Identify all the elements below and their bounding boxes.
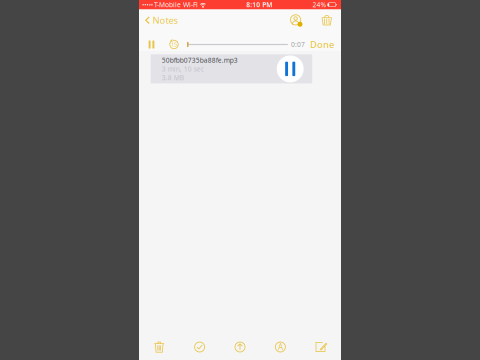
button[interactable]: Share note	[278, 9, 314, 31]
staticText: 8:10 PM	[246, 0, 272, 9]
button[interactable]: Skip back 15 seconds	[164, 34, 184, 54]
button[interactable]: 50bfbb0735ba88fe.mp3	[151, 54, 312, 83]
button[interactable]: Notes	[139, 9, 183, 31]
staticText: T-Mobile Wi-Fi	[154, 0, 198, 9]
button[interactable]: Pause	[139, 34, 164, 54]
button[interactable]: Attachments	[314, 9, 340, 31]
staticText: 3 min, 10 sec	[162, 64, 204, 73]
button[interactable]: Done	[179, 334, 220, 360]
button[interactable]: Done	[305, 34, 339, 54]
button[interactable]: Delete	[139, 334, 179, 360]
staticText: 50bfbb0735ba88fe.mp3	[162, 56, 238, 64]
staticText: 24%	[312, 0, 326, 9]
staticText: 15	[171, 41, 177, 48]
button[interactable]: Compose	[301, 334, 341, 360]
staticText: 0:07	[291, 40, 305, 49]
button[interactable]: Markup	[260, 334, 301, 360]
staticText: Notes	[152, 14, 177, 26]
staticText: Done	[310, 38, 334, 51]
staticText: 3.8 MB	[162, 73, 184, 82]
button[interactable]: Add	[220, 334, 260, 360]
staticText: A	[278, 342, 283, 352]
